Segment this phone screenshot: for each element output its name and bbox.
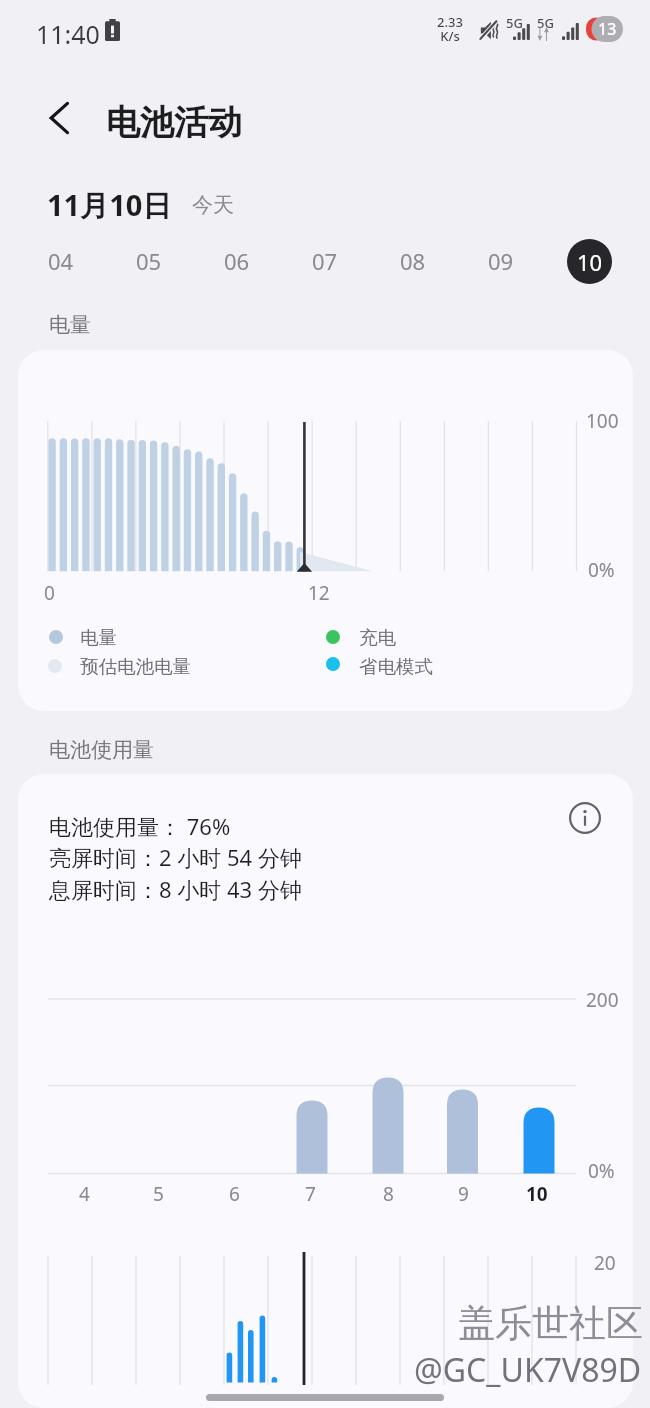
staticText: 11月10日 [47, 185, 172, 225]
staticText: 省电模式 [359, 655, 433, 678]
staticText: 盖乐世社区 [458, 1300, 643, 1347]
staticText: 07 [312, 246, 338, 276]
staticText: 5G [506, 14, 523, 32]
button[interactable]: 06 [205, 229, 269, 293]
staticText: 亮屏时间：2 小时 54 分钟 [49, 842, 302, 872]
staticText: 200 [586, 987, 619, 1013]
staticText: 11:40 [36, 17, 100, 51]
staticText: 0% [588, 557, 615, 583]
staticText: 充电 [359, 626, 396, 649]
button[interactable]: 08 [381, 229, 445, 293]
button[interactable]: Back [26, 84, 94, 152]
staticText: 8 [383, 1181, 394, 1207]
staticText: 今天 [192, 192, 234, 218]
staticText: 08 [400, 246, 426, 276]
staticText: 电池活动 [106, 101, 242, 144]
staticText: 0 [44, 580, 55, 606]
staticText: 05 [136, 246, 162, 276]
staticText: 预估电池电量 [80, 655, 191, 678]
staticText: 100 [586, 408, 619, 434]
staticText: 电量 [80, 626, 117, 649]
staticText: 12 [308, 580, 330, 606]
staticText: 电量 [49, 312, 91, 338]
button[interactable]: 09 [469, 229, 533, 293]
staticText: 息屏时间：8 小时 43 分钟 [49, 874, 302, 904]
staticText: 7 [305, 1181, 316, 1207]
staticText: 10 [577, 247, 603, 277]
staticText: 13 [598, 18, 617, 40]
staticText: 10 [526, 1181, 548, 1207]
staticText: 5 [153, 1181, 164, 1207]
staticText: 4 [79, 1181, 90, 1207]
staticText: @GC_UK7V89D [414, 1348, 642, 1392]
staticText: 电池使用量 [49, 737, 154, 763]
staticText: 电池使用量： 76% [49, 811, 231, 841]
staticText: 2.33 K/s [437, 13, 463, 45]
staticText: 06 [224, 246, 250, 276]
staticText: 5G [537, 14, 554, 32]
button[interactable]: 07 [293, 229, 357, 293]
staticText: 9 [458, 1181, 469, 1207]
staticText: 20 [594, 1250, 616, 1276]
button[interactable]: 05 [117, 229, 181, 293]
staticText: 04 [48, 246, 74, 276]
staticText: 09 [488, 246, 514, 276]
staticText: 6 [229, 1181, 240, 1207]
button[interactable]: Info [563, 796, 607, 840]
button[interactable]: 10 [557, 229, 621, 293]
staticText: 0% [588, 1158, 615, 1184]
button[interactable]: 04 [29, 229, 93, 293]
